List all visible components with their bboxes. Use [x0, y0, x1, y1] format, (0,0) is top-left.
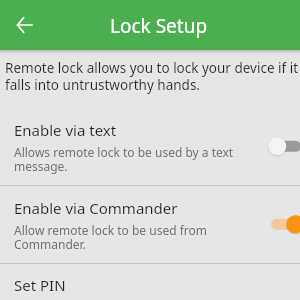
staticText: Enable via Commander — [14, 198, 178, 218]
staticText: Remote lock allows you to lock your devi… — [5, 59, 299, 94]
staticText: Allow remote lock to be used from Comman… — [14, 222, 207, 253]
button[interactable]: Toggle on — [262, 208, 300, 242]
button[interactable]: Enable via text — [0, 120, 300, 184]
staticText: Set PIN — [14, 275, 66, 295]
staticText: Enable via text — [14, 120, 117, 140]
button[interactable]: Enable via Commander — [0, 198, 300, 262]
button[interactable]: Set PIN — [0, 270, 300, 300]
button[interactable]: Toggle off — [262, 130, 300, 164]
staticText: Lock Setup — [110, 13, 208, 39]
staticText: Allows remote lock to be used by a text … — [14, 144, 234, 175]
button[interactable]: Back — [8, 8, 42, 42]
